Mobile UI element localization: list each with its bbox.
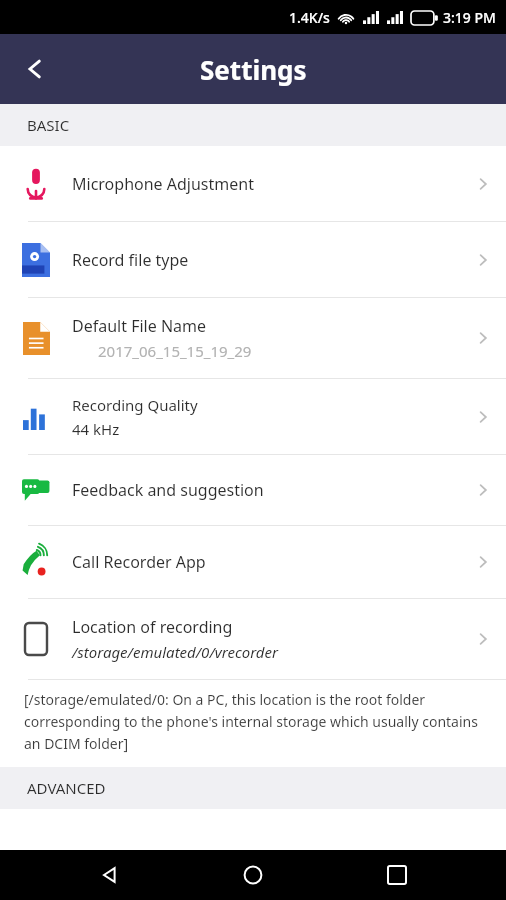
button[interactable]: Microphone Adjustment <box>0 146 506 221</box>
staticText: Call Recorder App <box>72 551 206 573</box>
staticText: Default File Name <box>72 315 207 337</box>
staticText: Location of recording <box>72 616 233 638</box>
staticText: Recording Quality <box>72 395 198 415</box>
button[interactable]: Feedback and suggestion <box>0 455 506 525</box>
button[interactable]: Home <box>218 850 288 900</box>
staticText: Microphone Adjustment <box>72 173 254 195</box>
button[interactable]: Recent apps <box>362 850 432 900</box>
button[interactable]: Record file type <box>0 222 506 297</box>
staticText: /storage/emulated/0/vrecorder <box>72 642 278 662</box>
staticText: 2017_06_15_15_19_29 <box>98 341 252 361</box>
button[interactable]: Location of recording <box>0 599 506 679</box>
staticText: 44 kHz <box>72 419 120 439</box>
staticText: BASIC <box>27 115 70 135</box>
button[interactable]: Call Recorder App <box>0 526 506 598</box>
button[interactable]: Recording Quality <box>0 379 506 454</box>
staticText: 1.4K/s <box>289 8 330 27</box>
button[interactable]: Back <box>0 34 70 104</box>
staticText: Record file type <box>72 249 189 271</box>
staticText: Settings <box>200 52 307 87</box>
button[interactable]: Default File Name <box>0 298 506 378</box>
staticText: [/storage/emulated/0: On a PC, this loca… <box>24 690 492 753</box>
staticText: ADVANCED <box>27 778 106 798</box>
staticText: 3:19 PM <box>443 8 496 27</box>
button[interactable]: Back <box>74 850 144 900</box>
staticText: Feedback and suggestion <box>72 479 264 501</box>
